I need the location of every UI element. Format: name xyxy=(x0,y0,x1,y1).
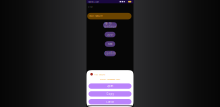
staticText: Open xyxy=(106,84,113,88)
button[interactable]: Confirm xyxy=(104,51,116,56)
staticText: netflix.com xyxy=(88,0,99,3)
button[interactable]: Not secure xyxy=(87,13,131,19)
staticText: 0-far xyxy=(88,5,93,8)
button[interactable]: Open xyxy=(104,32,115,37)
button[interactable]: Open xyxy=(88,83,131,89)
staticText: Open xyxy=(106,33,113,36)
staticText: Cancel xyxy=(106,100,114,103)
staticText: Not secure xyxy=(94,73,105,76)
staticText: Next xyxy=(107,42,112,46)
button[interactable]: Tap to continue xyxy=(103,22,117,28)
staticText: Copy xyxy=(106,92,113,96)
button[interactable]: Copy xyxy=(88,91,131,97)
staticText: Tap to continue xyxy=(104,22,116,28)
staticText: Confirm xyxy=(104,52,115,55)
staticText: Not secure xyxy=(89,14,102,18)
button[interactable]: Next xyxy=(105,41,115,47)
staticText: www.facebook.com xyxy=(100,77,120,81)
button[interactable]: Cancel xyxy=(88,99,131,104)
